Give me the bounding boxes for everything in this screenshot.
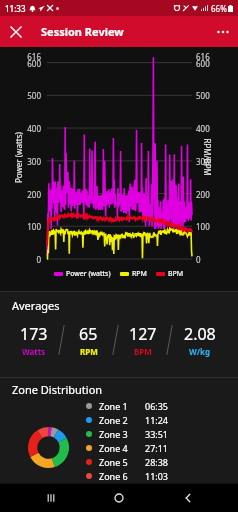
staticText: 28:38 [145, 456, 169, 468]
staticText: 11:24 [145, 414, 169, 426]
staticText: 400 [196, 123, 210, 134]
staticText: Zone 6 [99, 470, 145, 482]
button[interactable]: Close [0, 16, 31, 47]
button[interactable]: Back [170, 484, 206, 512]
staticText: Averages [12, 298, 60, 313]
button[interactable]: More options [207, 16, 238, 47]
staticText: 500 [0, 90, 41, 101]
staticText: 66% [211, 3, 227, 14]
staticText: 600 [196, 58, 210, 69]
staticText: 100 [0, 221, 41, 232]
staticText: 200 [196, 189, 210, 200]
staticText: Zone 1 [99, 400, 145, 412]
staticText: 400 [0, 123, 41, 134]
staticText: 0 [0, 254, 41, 265]
staticText: 65 [79, 323, 98, 345]
staticText: 33:51 [145, 428, 169, 440]
staticText: Zone 3 [99, 428, 145, 440]
staticText: Zone 5 [99, 456, 145, 468]
staticText: 600 [0, 58, 41, 69]
staticText: Session Review [41, 24, 124, 39]
staticText: BPM [134, 346, 152, 357]
staticText: Zone 4 [99, 442, 145, 454]
staticText: 100 [196, 221, 210, 232]
staticText: 173 [20, 323, 48, 345]
staticText: RPM [80, 346, 98, 357]
staticText: RPM/BPM [201, 138, 212, 176]
staticText: Zone Distribution [12, 382, 103, 397]
staticText: BPM [168, 269, 184, 279]
staticText: Watts [22, 346, 46, 357]
staticText: 11:33 [5, 3, 26, 14]
staticText: 300 [196, 156, 210, 167]
staticText: Power (watts) [66, 269, 111, 279]
staticText: W/kg [189, 346, 211, 357]
staticText: RPM [132, 269, 147, 279]
staticText: 616 [196, 51, 210, 62]
staticText: 27:11 [145, 442, 169, 454]
staticText: 11:03 [145, 470, 169, 482]
staticText: 500 [196, 90, 210, 101]
staticText: 200 [0, 189, 41, 200]
staticText: 616 [0, 51, 41, 62]
staticText: Power (watts) [13, 132, 24, 183]
staticText: 127 [129, 323, 157, 345]
staticText: 0 [196, 254, 201, 265]
button[interactable]: Recent apps [33, 484, 69, 512]
staticText: 2.08 [184, 323, 216, 345]
button[interactable]: Home [101, 484, 137, 512]
staticText: 06:35 [145, 400, 169, 412]
staticText: 300 [0, 156, 41, 167]
staticText: Zone 2 [99, 414, 145, 426]
